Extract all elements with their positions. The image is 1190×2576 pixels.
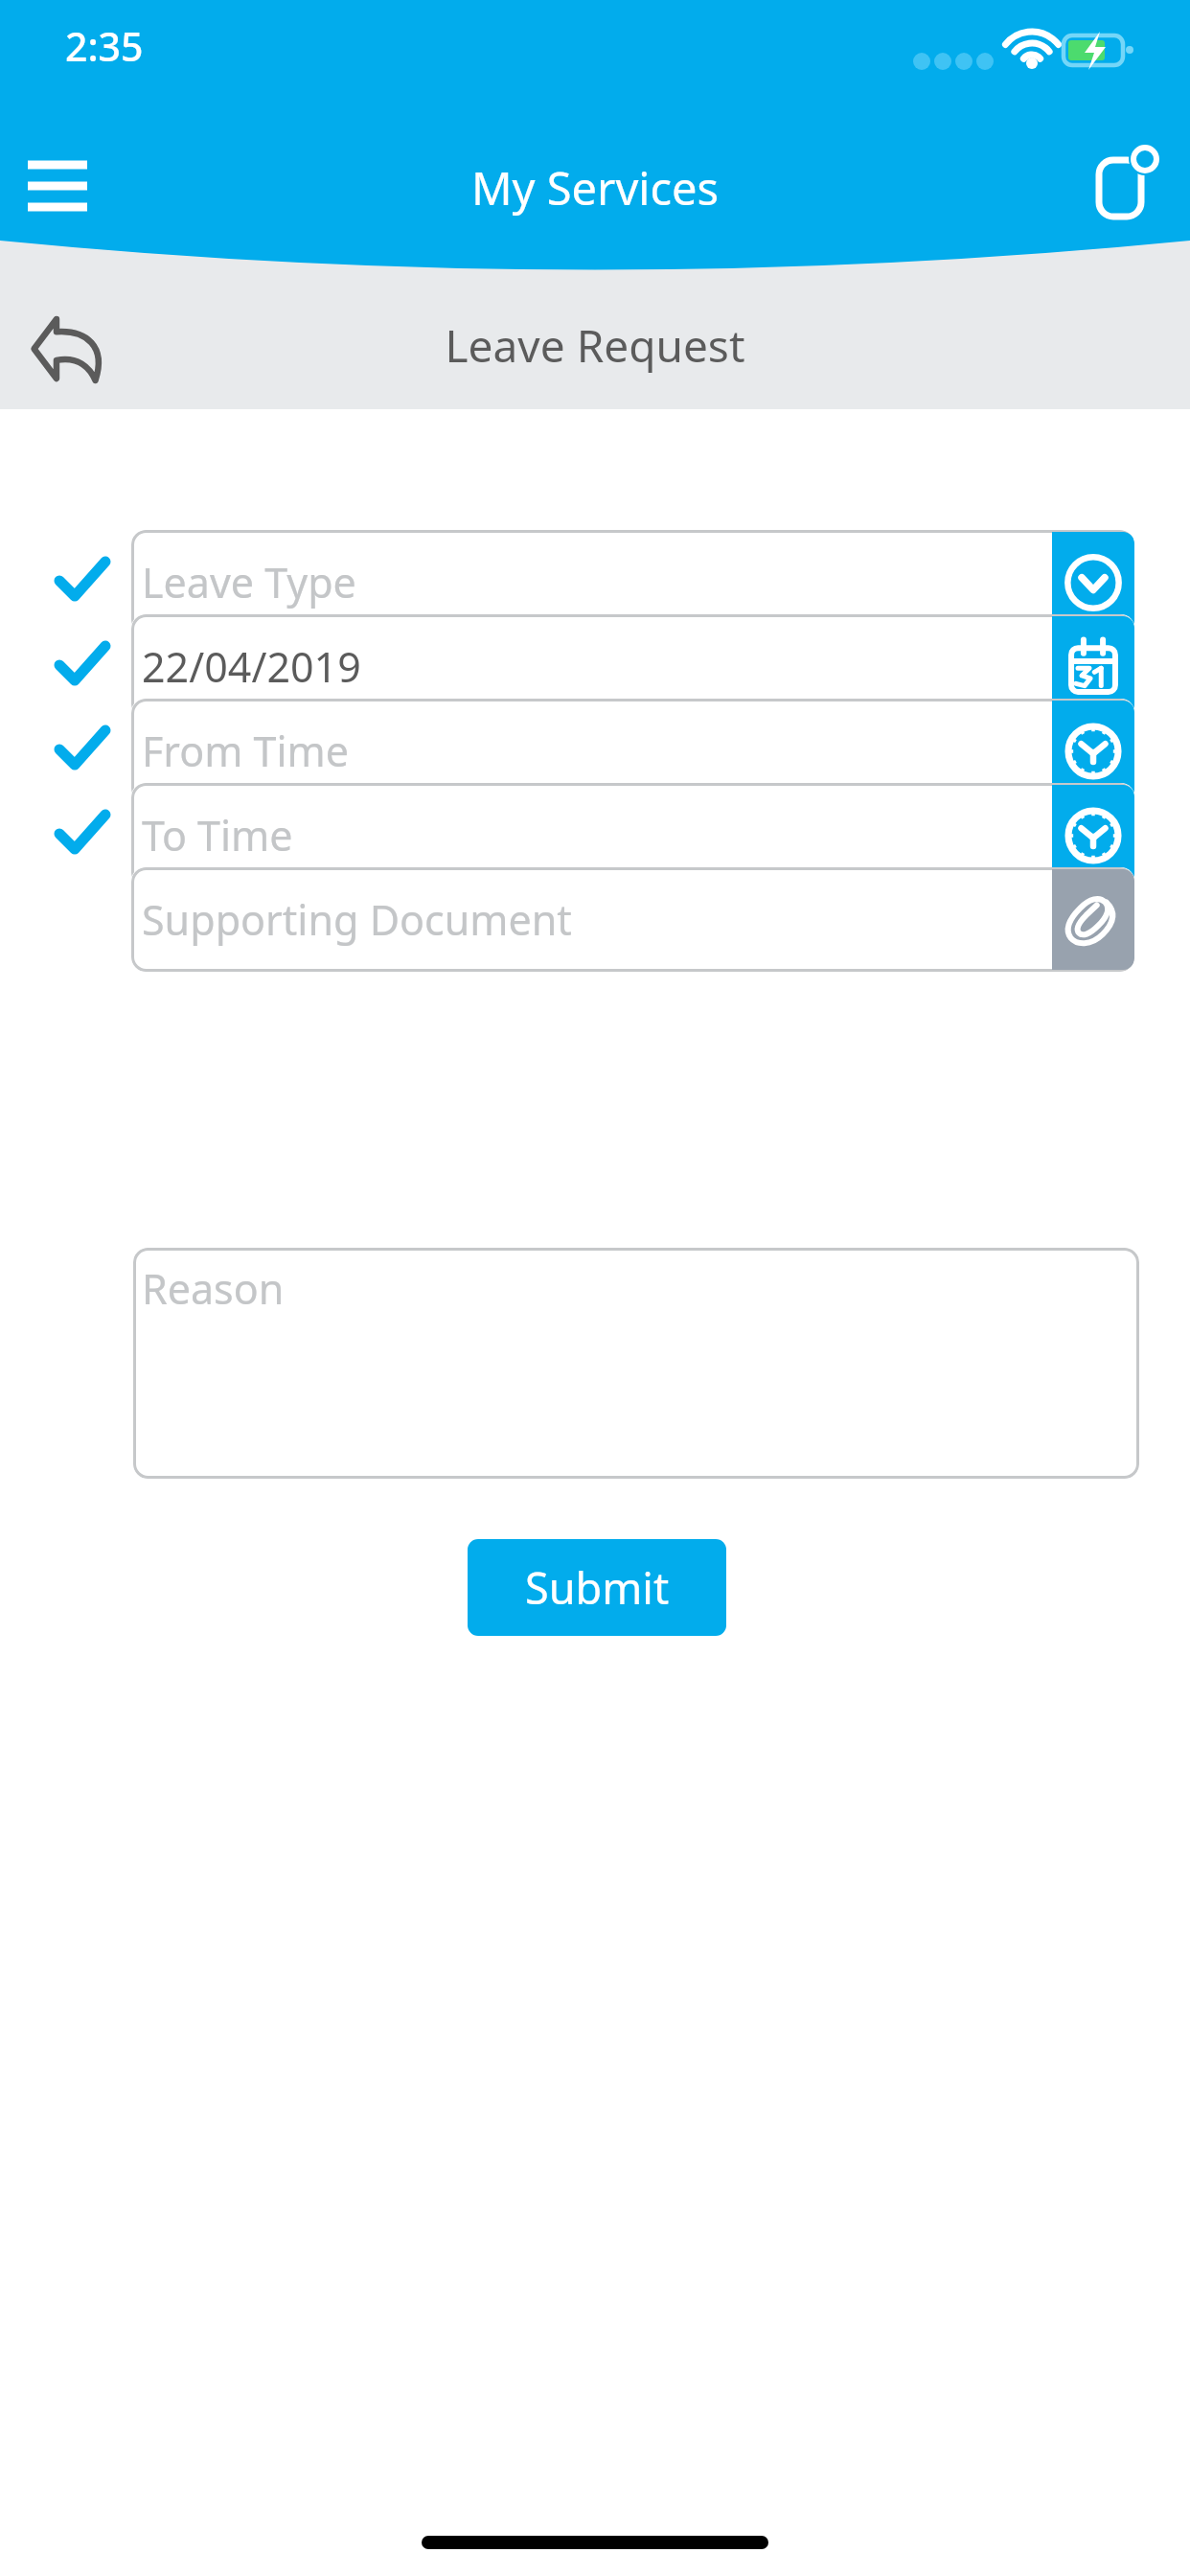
staticText: To Time bbox=[142, 807, 293, 863]
button[interactable]: Notifications bbox=[1081, 139, 1173, 229]
button[interactable]: Submit bbox=[468, 1539, 726, 1636]
button[interactable]: Back bbox=[15, 297, 125, 401]
button[interactable]: Pick to time bbox=[1052, 785, 1134, 885]
button[interactable]: Pick date bbox=[1052, 616, 1134, 717]
button[interactable]: Supporting Document bbox=[131, 867, 1134, 972]
staticText: Supporting Document bbox=[142, 891, 572, 948]
button[interactable]: From Time bbox=[131, 699, 1134, 803]
button[interactable]: Attach document bbox=[1052, 869, 1134, 970]
button[interactable]: 22/04/2019 bbox=[131, 614, 1134, 719]
staticText: Reason bbox=[142, 1260, 285, 1317]
button[interactable]: To Time bbox=[131, 783, 1134, 887]
staticText: My Services bbox=[0, 157, 1190, 218]
button[interactable]: Reason bbox=[133, 1248, 1139, 1479]
staticText: Leave Request bbox=[0, 315, 1190, 376]
button[interactable]: Pick from time bbox=[1052, 701, 1134, 801]
button[interactable]: Select leave type bbox=[1052, 532, 1134, 632]
staticText: Leave Type bbox=[142, 554, 356, 610]
staticText: 2:35 bbox=[65, 19, 144, 73]
button[interactable]: Leave Type bbox=[131, 530, 1134, 634]
staticText: 22/04/2019 bbox=[142, 638, 361, 695]
staticText: From Time bbox=[142, 723, 350, 779]
button[interactable]: Menu bbox=[8, 144, 107, 228]
staticText: Submit bbox=[525, 1558, 670, 1617]
